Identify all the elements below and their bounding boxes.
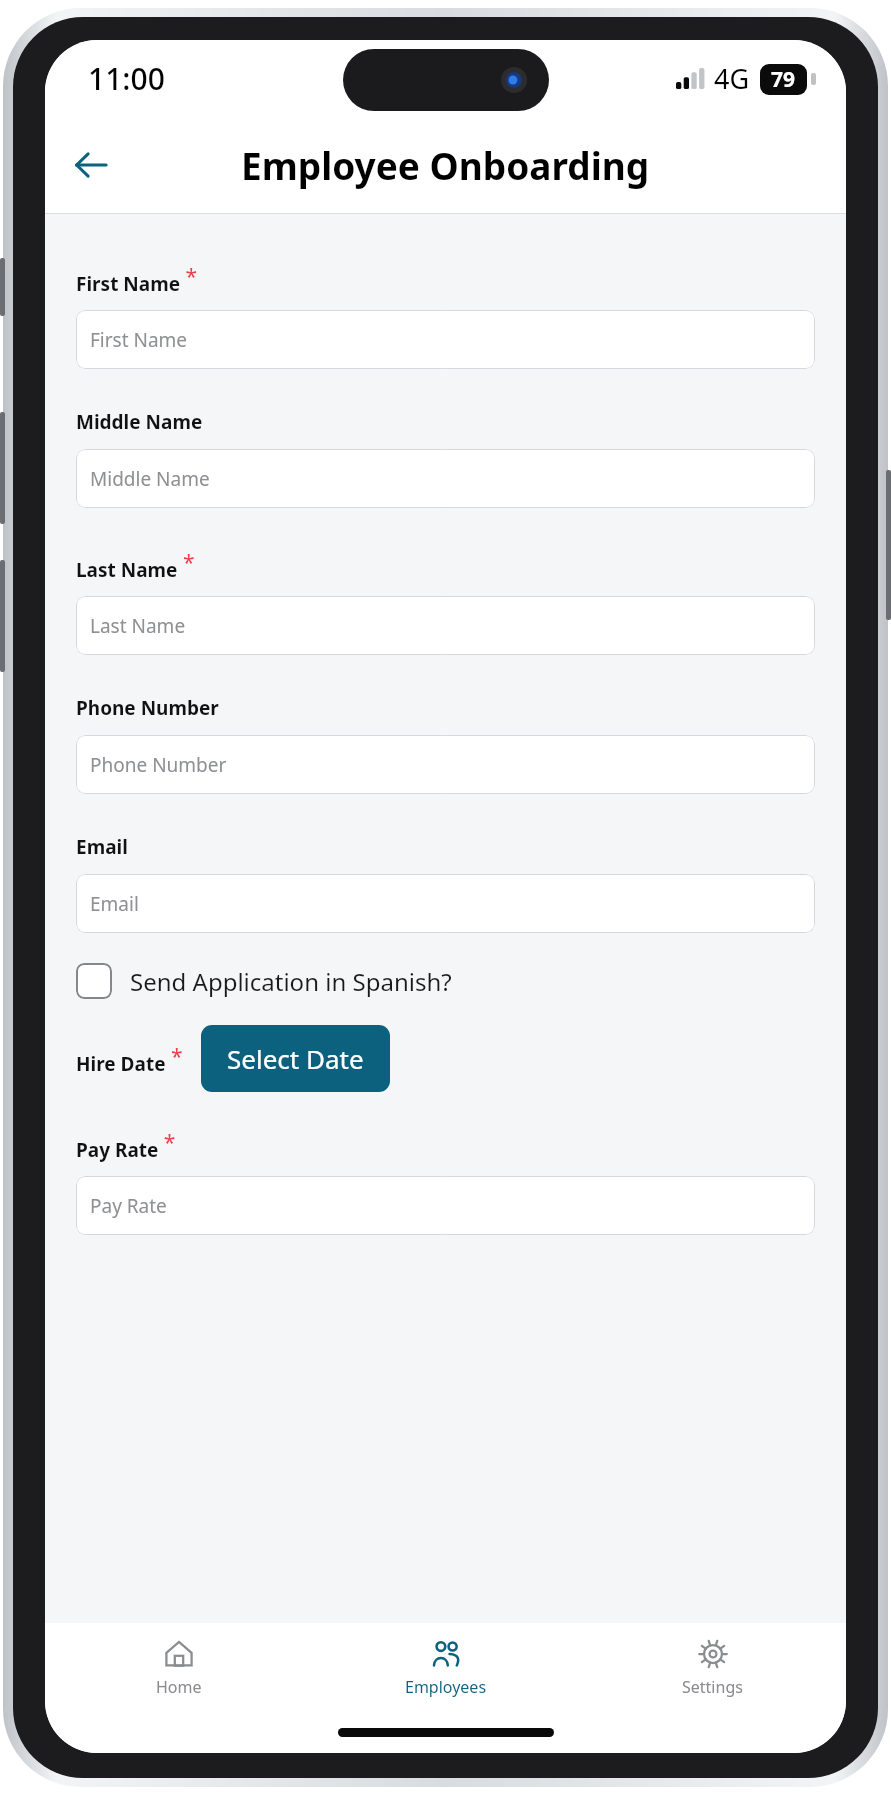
staticText: First Name	[90, 327, 188, 353]
button[interactable]: Phone Number	[76, 735, 815, 794]
staticText: Employees	[405, 1676, 487, 1698]
button[interactable]: Email	[76, 874, 815, 933]
staticText: Send Application in Spanish?	[130, 965, 452, 998]
staticText: Pay Rate *	[76, 1128, 176, 1162]
button[interactable]: Settings	[579, 1633, 846, 1704]
button[interactable]: First Name	[76, 310, 815, 369]
button[interactable]: Back	[63, 137, 119, 193]
staticText: Email	[76, 834, 128, 860]
staticText: Pay Rate	[90, 1193, 167, 1219]
staticText: Phone Number	[90, 752, 227, 778]
button[interactable]: Home	[45, 1633, 312, 1704]
button[interactable]: Send Application in Spanish?	[76, 963, 452, 999]
staticText: Settings	[682, 1676, 743, 1698]
staticText: Home	[156, 1676, 202, 1698]
staticText: 4G	[714, 60, 750, 97]
staticText: Last Name *	[76, 548, 195, 582]
staticText: Hire Date *	[76, 1042, 183, 1076]
staticText: Middle Name	[76, 409, 203, 435]
button[interactable]: Employees	[312, 1633, 579, 1704]
button[interactable]: Middle Name	[76, 449, 815, 508]
staticText: 11:00	[88, 58, 165, 99]
staticText: First Name *	[76, 262, 198, 296]
button[interactable]: Select Date	[201, 1025, 390, 1092]
button[interactable]: Pay Rate	[76, 1176, 815, 1235]
staticText: Email	[90, 891, 139, 917]
staticText: Middle Name	[90, 466, 210, 492]
staticText: 79	[771, 65, 796, 94]
staticText: Select Date	[227, 1041, 364, 1076]
staticText: Phone Number	[76, 695, 219, 721]
button[interactable]: Last Name	[76, 596, 815, 655]
staticText: Employee Onboarding	[241, 140, 650, 190]
staticText: Last Name	[90, 613, 186, 639]
